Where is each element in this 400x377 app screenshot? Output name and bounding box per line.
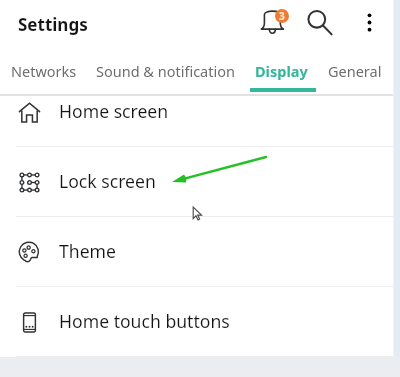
staticText: Networks	[11, 61, 77, 81]
staticText: Home touch buttons	[59, 309, 230, 333]
staticText: Settings	[18, 13, 88, 36]
button[interactable]: Display	[255, 61, 308, 81]
staticText: Lock screen	[59, 169, 156, 193]
button[interactable]: Home touch buttons	[0, 287, 400, 357]
button[interactable]: Search	[297, 0, 341, 44]
staticText: 3	[279, 9, 285, 23]
button[interactable]: General	[328, 61, 382, 81]
button[interactable]: Sound & notification	[96, 61, 235, 81]
button[interactable]: Home screen	[0, 95, 400, 147]
button[interactable]: Theme	[0, 217, 400, 287]
staticText: General	[328, 61, 382, 81]
staticText: Home screen	[59, 99, 169, 123]
button[interactable]: More options	[347, 0, 391, 44]
button[interactable]: Notifications	[250, 2, 294, 46]
button[interactable]: Lock screen	[0, 147, 400, 217]
staticText: Theme	[59, 239, 116, 263]
button[interactable]: Networks	[11, 61, 77, 81]
staticText: Sound & notification	[96, 61, 235, 81]
staticText: Display	[255, 61, 308, 81]
